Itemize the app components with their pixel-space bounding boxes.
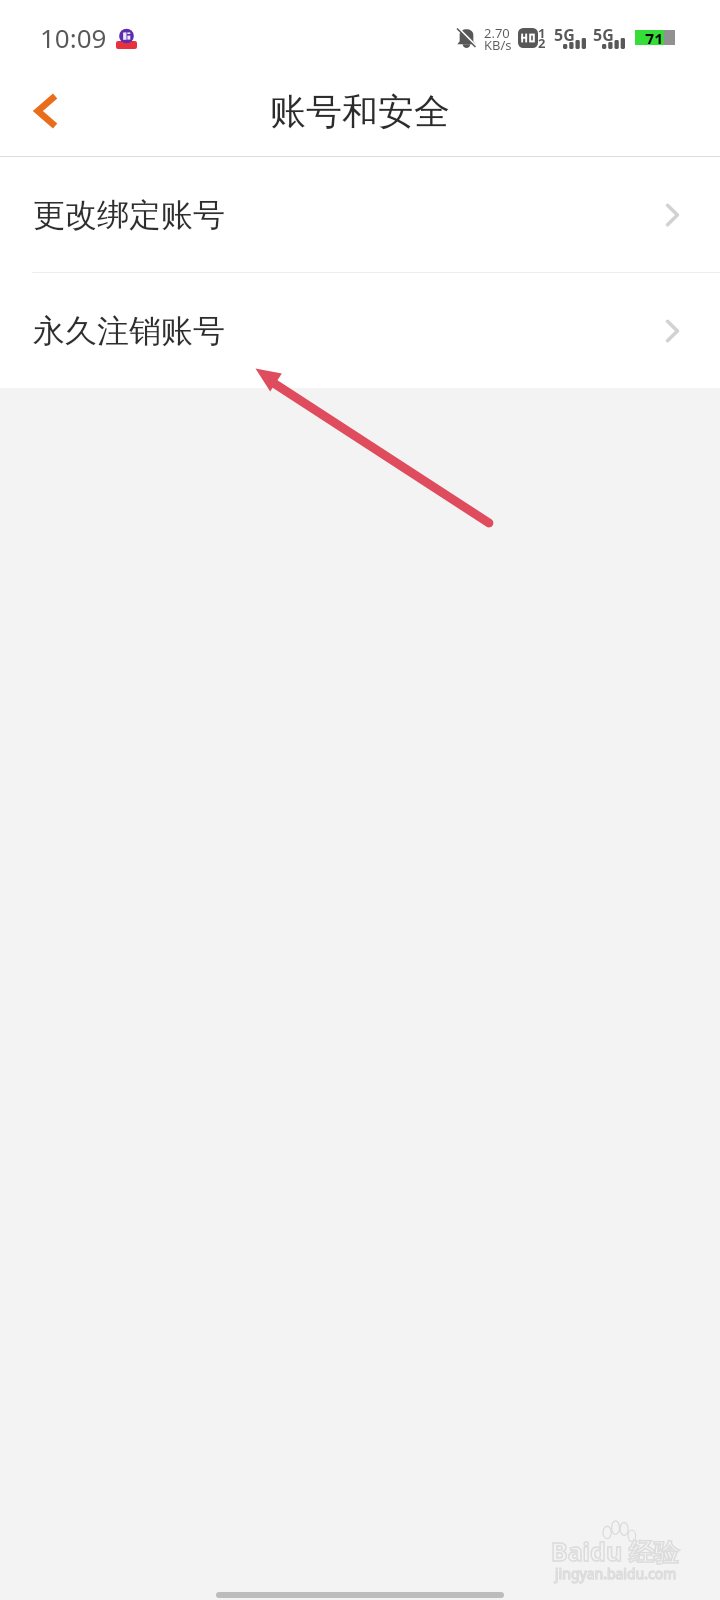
staticText: Baidu 经验 (551, 1534, 679, 1568)
staticText: 5G (554, 24, 575, 46)
staticText: jingyan.baidu.com (555, 1564, 677, 1583)
staticText: 2 (538, 34, 546, 52)
staticText: 更改绑定账号 (33, 195, 225, 235)
staticText: 10:09 (40, 20, 107, 55)
staticText: KB/s (484, 36, 512, 54)
staticText: 5G (593, 24, 614, 46)
staticText: 2.70 (484, 24, 510, 42)
staticText: 71 (645, 29, 664, 44)
staticText: 账号和安全 (270, 89, 450, 134)
staticText: 1 (538, 24, 546, 42)
button[interactable]: 永久注销账号 (0, 273, 720, 388)
button[interactable]: 更改绑定账号 (0, 157, 720, 272)
button[interactable]: Back (0, 66, 88, 156)
staticText: 永久注销账号 (33, 311, 225, 351)
